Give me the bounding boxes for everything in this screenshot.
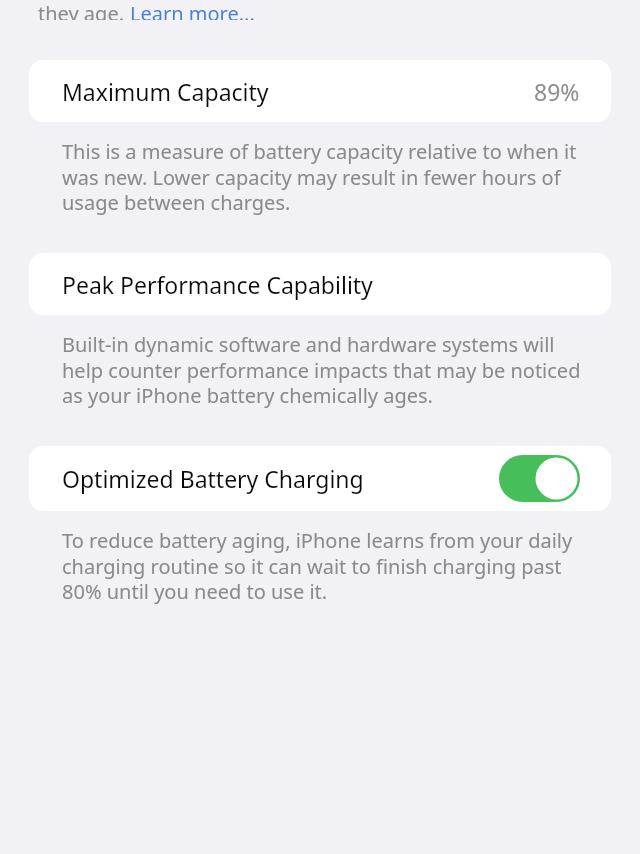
staticText: 89% [534, 76, 580, 107]
staticText: This is a measure of battery capacity re… [62, 138, 583, 215]
button[interactable]: Peak Performance Capability [29, 253, 611, 315]
button[interactable]: Learn more... [130, 0, 255, 20]
button[interactable]: Optimized Battery Charging [29, 446, 611, 511]
staticText: To reduce battery aging, iPhone learns f… [62, 527, 583, 604]
staticText: Optimized Battery Charging [62, 463, 364, 494]
staticText: they age. [38, 0, 130, 20]
staticText: Built-in dynamic software and hardware s… [62, 331, 583, 408]
button[interactable]: Maximum Capacity [29, 60, 611, 122]
staticText: Peak Performance Capability [62, 269, 373, 300]
button[interactable]: Optimized Battery Charging toggle, on [499, 455, 580, 502]
staticText: Maximum Capacity [62, 76, 269, 107]
